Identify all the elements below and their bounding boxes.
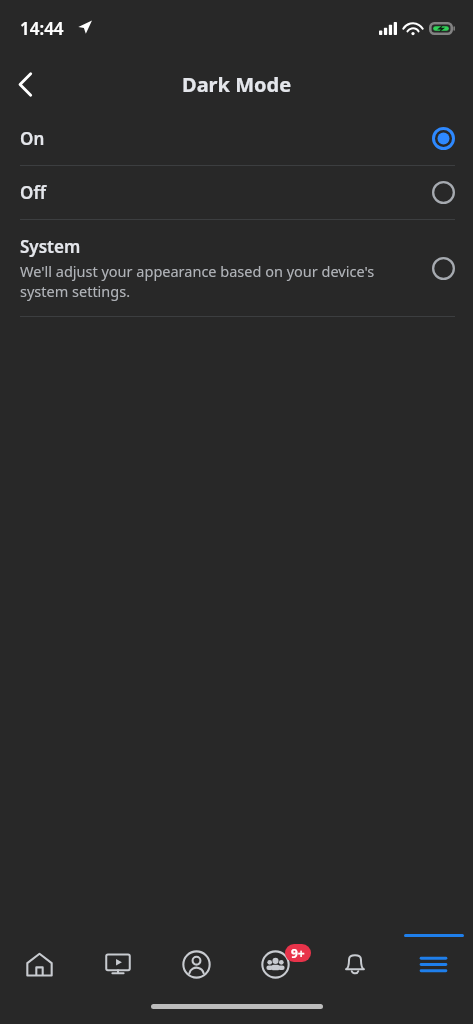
staticText: 14:44	[20, 17, 64, 40]
button[interactable]: Back	[3, 62, 47, 106]
staticText: On	[20, 127, 45, 150]
button[interactable]: On	[0, 112, 473, 165]
button[interactable]: Off	[0, 166, 473, 219]
button[interactable]: Menu	[394, 932, 473, 996]
staticText: 9+	[291, 945, 305, 961]
button[interactable]: Video	[78, 932, 157, 996]
staticText: Dark Mode	[182, 71, 292, 98]
button[interactable]: Profile	[157, 932, 236, 996]
button[interactable]: System	[0, 220, 473, 316]
button[interactable]: Friends, 9+ new	[236, 932, 315, 996]
staticText: Off	[20, 181, 46, 204]
staticText: System	[20, 235, 81, 258]
button[interactable]: Notifications	[315, 932, 394, 996]
staticText: We'll adjust your appearance based on yo…	[20, 261, 388, 301]
button[interactable]: Home	[0, 932, 78, 996]
